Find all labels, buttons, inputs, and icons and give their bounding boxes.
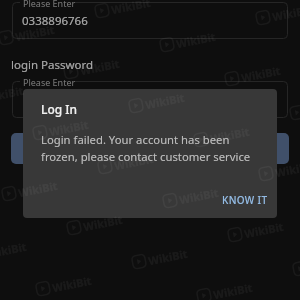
staticText: login Password <box>11 57 94 73</box>
staticText: WikiBit <box>0 239 28 261</box>
staticText: WikiBit <box>240 63 282 85</box>
staticText: WikiBit <box>110 0 152 17</box>
staticText: WikiBit <box>14 22 56 44</box>
staticText: 0338896766 <box>22 13 88 29</box>
staticText: WikiBit <box>144 90 186 112</box>
staticText: WikiBit <box>175 29 217 51</box>
staticText: Login failed. Your account has been froz… <box>41 132 256 164</box>
staticText: WikiBit <box>212 280 254 300</box>
staticText: WikiBit <box>147 246 189 268</box>
staticText: Please Enter <box>23 0 76 9</box>
button[interactable]: Log In <box>11 133 289 164</box>
staticText: KNOW IT <box>222 193 268 207</box>
staticText: WikiBit <box>48 117 90 139</box>
button[interactable]: KNOW IT <box>214 188 276 212</box>
staticText: WikiBit <box>178 185 220 207</box>
staticText: Log In <box>132 141 168 157</box>
staticText: Please Enter <box>23 76 76 88</box>
staticText: WikiBit <box>17 178 59 200</box>
staticText: WikiBit <box>113 151 155 173</box>
staticText: WikiBit <box>0 83 25 105</box>
staticText: WikiBit <box>271 2 300 24</box>
staticText: WikiBit <box>79 56 121 78</box>
staticText: WikiBit <box>209 124 251 146</box>
staticText: WikiBit <box>51 273 93 295</box>
staticText: WikiBit <box>274 158 300 180</box>
staticText: Log In <box>41 101 78 117</box>
staticText: WikiBit <box>82 212 124 234</box>
staticText: WikiBit <box>243 219 285 241</box>
